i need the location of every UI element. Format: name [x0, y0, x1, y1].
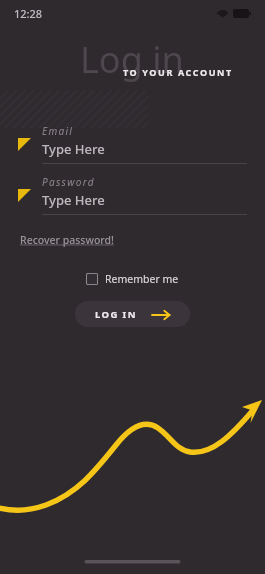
staticText: LOG IN — [95, 308, 137, 321]
staticText: Recover password! — [20, 233, 114, 247]
staticText: TO YOUR ACCOUNT — [123, 66, 233, 78]
staticText: Log in — [80, 35, 184, 84]
staticText: Remember me — [105, 272, 179, 286]
button[interactable]: LOG IN — [75, 301, 190, 327]
staticText: Password — [42, 175, 95, 189]
button[interactable]: Email — [18, 124, 247, 164]
button[interactable]: Password — [18, 175, 247, 215]
button[interactable]: Recover password! — [20, 231, 114, 249]
staticText: Type Here — [42, 140, 105, 158]
staticText: 12:28 — [14, 6, 43, 21]
staticText: Type Here — [42, 191, 105, 209]
button[interactable]: Remember me — [82, 269, 183, 289]
staticText: Email — [42, 124, 74, 138]
